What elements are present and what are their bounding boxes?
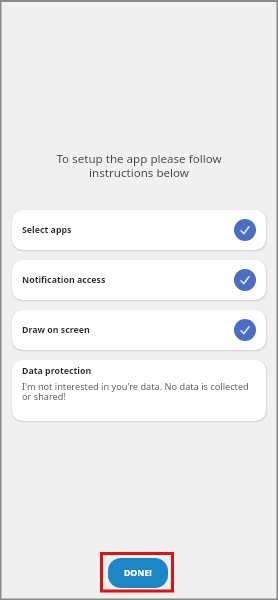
staticText: Data protection (22, 365, 92, 377)
staticText: Select apps (22, 224, 72, 236)
staticText: DONE! (124, 567, 152, 579)
button[interactable]: DONE! (108, 558, 168, 588)
staticText: Draw on screen (22, 324, 90, 336)
button[interactable]: Draw on screen (12, 310, 266, 350)
button[interactable]: Select apps (12, 210, 266, 250)
staticText: To setup the app please follow instructi… (0, 151, 278, 180)
staticText: Notification access (22, 274, 106, 286)
button[interactable]: Data protection (12, 360, 266, 421)
staticText: I'm not interested in you're data. No da… (22, 380, 249, 403)
button[interactable]: Notification access (12, 260, 266, 300)
